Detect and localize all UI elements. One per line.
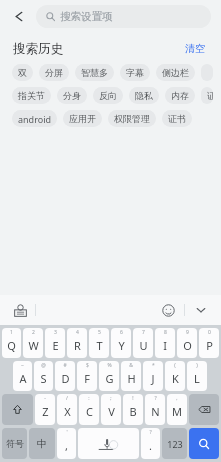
staticText: L — [194, 371, 200, 386]
staticText: E — [52, 338, 59, 353]
staticText: 搜索历史 — [13, 41, 63, 57]
staticText: 智慧多 — [81, 67, 108, 78]
button[interactable]: ) — [187, 361, 207, 391]
staticText: U — [139, 338, 148, 353]
staticText: $ — [86, 362, 89, 369]
button[interactable]: 应用开 — [63, 110, 102, 127]
button[interactable]: ? — [145, 394, 165, 425]
button[interactable]: 中 — [29, 428, 55, 459]
button[interactable]: Hide keyboard — [190, 299, 212, 321]
button[interactable]: 字幕 — [120, 64, 150, 81]
button[interactable]: Emoji — [157, 299, 179, 321]
staticText: I — [163, 338, 167, 353]
staticText: , — [176, 395, 178, 402]
button[interactable]: , — [167, 394, 187, 425]
button[interactable]: ( — [165, 361, 185, 391]
staticText: 5 — [98, 329, 101, 336]
button[interactable]: 7 — [133, 328, 153, 358]
staticText: 中 — [37, 437, 47, 450]
button[interactable]: 双 — [12, 64, 33, 81]
staticText: , — [65, 438, 68, 453]
staticText: M — [172, 404, 182, 419]
button[interactable]: Input settings — [9, 299, 31, 321]
button[interactable]: 指关节 — [12, 87, 51, 104]
staticText: 应用开 — [69, 113, 96, 124]
staticText: 隐私 — [135, 90, 153, 101]
button[interactable]: 清空 — [182, 40, 208, 57]
button[interactable]: Back — [6, 3, 32, 29]
staticText: 123 — [167, 438, 183, 450]
button[interactable]: / — [57, 394, 77, 425]
staticText: C — [86, 404, 93, 419]
button[interactable]: Search — [189, 428, 219, 459]
button[interactable]: 分身 — [57, 87, 87, 104]
button[interactable]: 搜索设置项 — [36, 5, 211, 28]
button[interactable]: * — [143, 361, 163, 391]
button[interactable]: ! — [123, 394, 143, 425]
button[interactable]: Shift — [2, 394, 33, 425]
button[interactable]: 反向 — [93, 87, 123, 104]
button[interactable]: 123 — [162, 428, 187, 459]
button[interactable]: android — [12, 110, 57, 127]
staticText: 1 — [10, 329, 13, 336]
staticText: Y — [118, 338, 125, 353]
button[interactable]: 隐私 — [129, 87, 159, 104]
staticText: F — [84, 371, 90, 386]
button[interactable]: 9 — [177, 328, 197, 358]
button[interactable]: # — [55, 361, 75, 391]
button[interactable]: 2 — [23, 328, 43, 358]
button[interactable]: ~ — [13, 361, 32, 391]
button[interactable]: 0 — [199, 328, 219, 358]
button[interactable]: - — [35, 394, 55, 425]
staticText: 7 — [142, 329, 145, 336]
staticText: # — [63, 362, 67, 369]
staticText: ? — [149, 429, 152, 436]
staticText: ? — [154, 395, 157, 402]
staticText: 侧边栏 — [162, 67, 189, 78]
button[interactable]: AI — [201, 64, 213, 81]
staticText: ; — [110, 395, 112, 402]
button[interactable]: 权限管理 — [108, 110, 156, 127]
button[interactable]: 证 — [201, 87, 213, 104]
button[interactable]: ' — [57, 428, 76, 459]
button[interactable]: 3 — [45, 328, 65, 358]
button[interactable]: % — [99, 361, 119, 391]
staticText: 4 — [76, 329, 79, 336]
button[interactable]: 5 — [89, 328, 109, 358]
staticText: ( — [174, 362, 176, 369]
staticText: W — [28, 338, 39, 353]
staticText: 指关节 — [18, 90, 45, 101]
button[interactable]: & — [121, 361, 141, 391]
button[interactable]: ; — [101, 394, 121, 425]
button[interactable]: 内存 — [165, 87, 195, 104]
button[interactable]: 证书 — [162, 110, 192, 127]
button[interactable]: 4 — [67, 328, 87, 358]
button[interactable]: 符号 — [2, 428, 27, 459]
staticText: S — [40, 371, 47, 386]
staticText: 内存 — [171, 90, 189, 101]
staticText: A — [19, 371, 27, 386]
staticText: 6 — [120, 329, 123, 336]
button[interactable]: $ — [77, 361, 97, 391]
staticText: 0 — [208, 329, 211, 336]
button[interactable]: 分屏 — [39, 64, 69, 81]
staticText: B — [129, 404, 137, 419]
button[interactable]: 1 — [2, 328, 21, 358]
button[interactable]: ? — [141, 428, 160, 459]
button[interactable]: @ — [34, 361, 53, 391]
staticText: 2 — [32, 329, 35, 336]
staticText: 字幕 — [126, 67, 144, 78]
staticText: - — [44, 395, 46, 402]
button[interactable]: Backspace — [189, 394, 219, 425]
staticText: 双 — [18, 67, 27, 78]
staticText: 9 — [186, 329, 189, 336]
staticText: ) — [196, 362, 198, 369]
button[interactable]: 智慧多 — [75, 64, 114, 81]
button[interactable]: 侧边栏 — [156, 64, 195, 81]
button[interactable]: : — [79, 394, 99, 425]
button[interactable]: Space — [78, 428, 139, 459]
button[interactable]: 8 — [155, 328, 175, 358]
staticText: . — [149, 438, 152, 453]
button[interactable]: 6 — [111, 328, 131, 358]
staticText: H — [127, 371, 136, 386]
